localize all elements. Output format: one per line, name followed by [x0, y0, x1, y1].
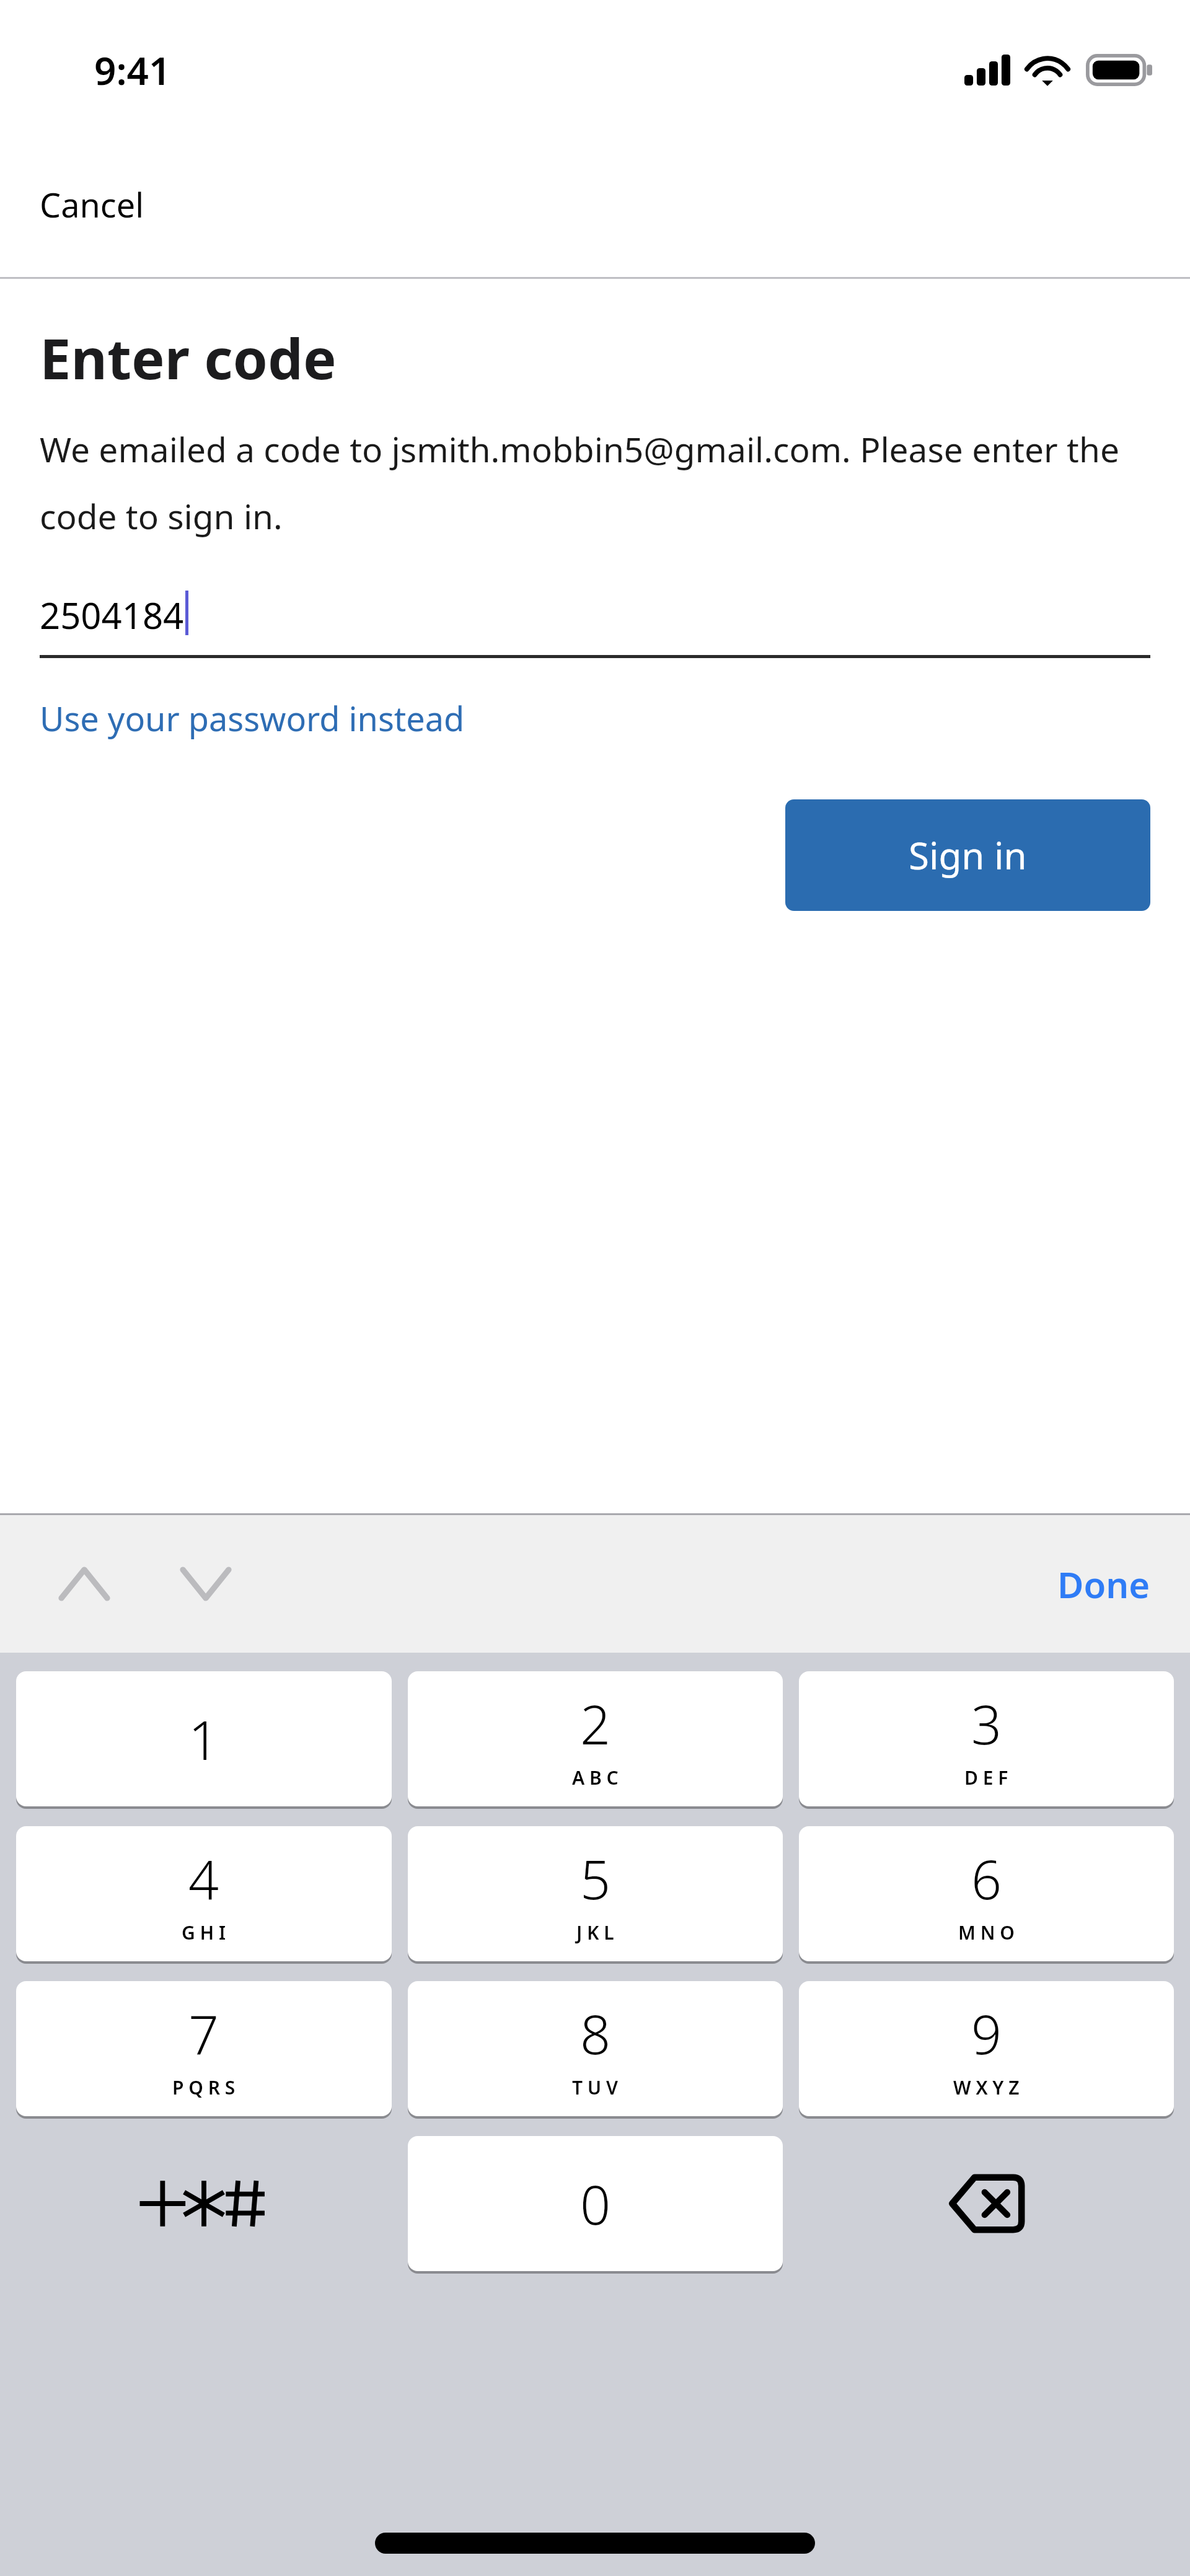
- button[interactable]: 8: [408, 1981, 783, 2116]
- staticText: 7: [188, 1997, 219, 2070]
- staticText: 9:41: [94, 44, 171, 96]
- button[interactable]: 7: [16, 1981, 392, 2116]
- staticText: Sign in: [909, 830, 1027, 881]
- button[interactable]: Sign in: [785, 799, 1150, 911]
- button[interactable]: 0: [408, 2136, 783, 2271]
- staticText: Cancel: [40, 182, 144, 227]
- button[interactable]: 2504184: [40, 571, 1150, 658]
- staticText: J K L: [576, 1920, 614, 1945]
- staticText: 4: [188, 1842, 219, 1915]
- staticText: 2: [580, 1687, 611, 1760]
- button[interactable]: Done: [1044, 1549, 1164, 1620]
- button[interactable]: Symbols: [16, 2136, 392, 2271]
- button[interactable]: 2: [408, 1671, 783, 1806]
- staticText: 8: [580, 1997, 611, 2070]
- button[interactable]: Backspace: [799, 2136, 1174, 2271]
- staticText: 6: [971, 1842, 1002, 1915]
- staticText: 2504184: [40, 591, 184, 640]
- staticText: P Q R S: [172, 2075, 236, 2100]
- button[interactable]: Next field: [169, 1547, 243, 1621]
- staticText: D E F: [964, 1765, 1008, 1790]
- button[interactable]: 9: [799, 1981, 1174, 2116]
- staticText: Enter code: [40, 320, 337, 396]
- staticText: 1: [188, 1703, 219, 1775]
- staticText: Use your password instead: [40, 695, 465, 741]
- staticText: 3: [971, 1687, 1002, 1760]
- button[interactable]: 1: [16, 1671, 392, 1806]
- staticText: A B C: [572, 1765, 619, 1790]
- staticText: 5: [580, 1842, 611, 1915]
- button[interactable]: Previous field: [47, 1547, 121, 1621]
- button[interactable]: 6: [799, 1826, 1174, 1961]
- staticText: 9: [971, 1997, 1002, 2070]
- button[interactable]: 3: [799, 1671, 1174, 1806]
- button[interactable]: Cancel: [31, 172, 153, 237]
- staticText: Done: [1057, 1560, 1150, 1609]
- staticText: We emailed a code to jsmith.mobbin5@gmai…: [40, 426, 1150, 539]
- staticText: M N O: [958, 1920, 1015, 1945]
- staticText: W X Y Z: [953, 2075, 1020, 2100]
- staticText: 0: [580, 2168, 611, 2240]
- staticText: G H I: [182, 1920, 226, 1945]
- button[interactable]: 5: [408, 1826, 783, 1961]
- button[interactable]: Use your password instead: [40, 690, 465, 746]
- staticText: T U V: [572, 2075, 619, 2100]
- button[interactable]: 4: [16, 1826, 392, 1961]
